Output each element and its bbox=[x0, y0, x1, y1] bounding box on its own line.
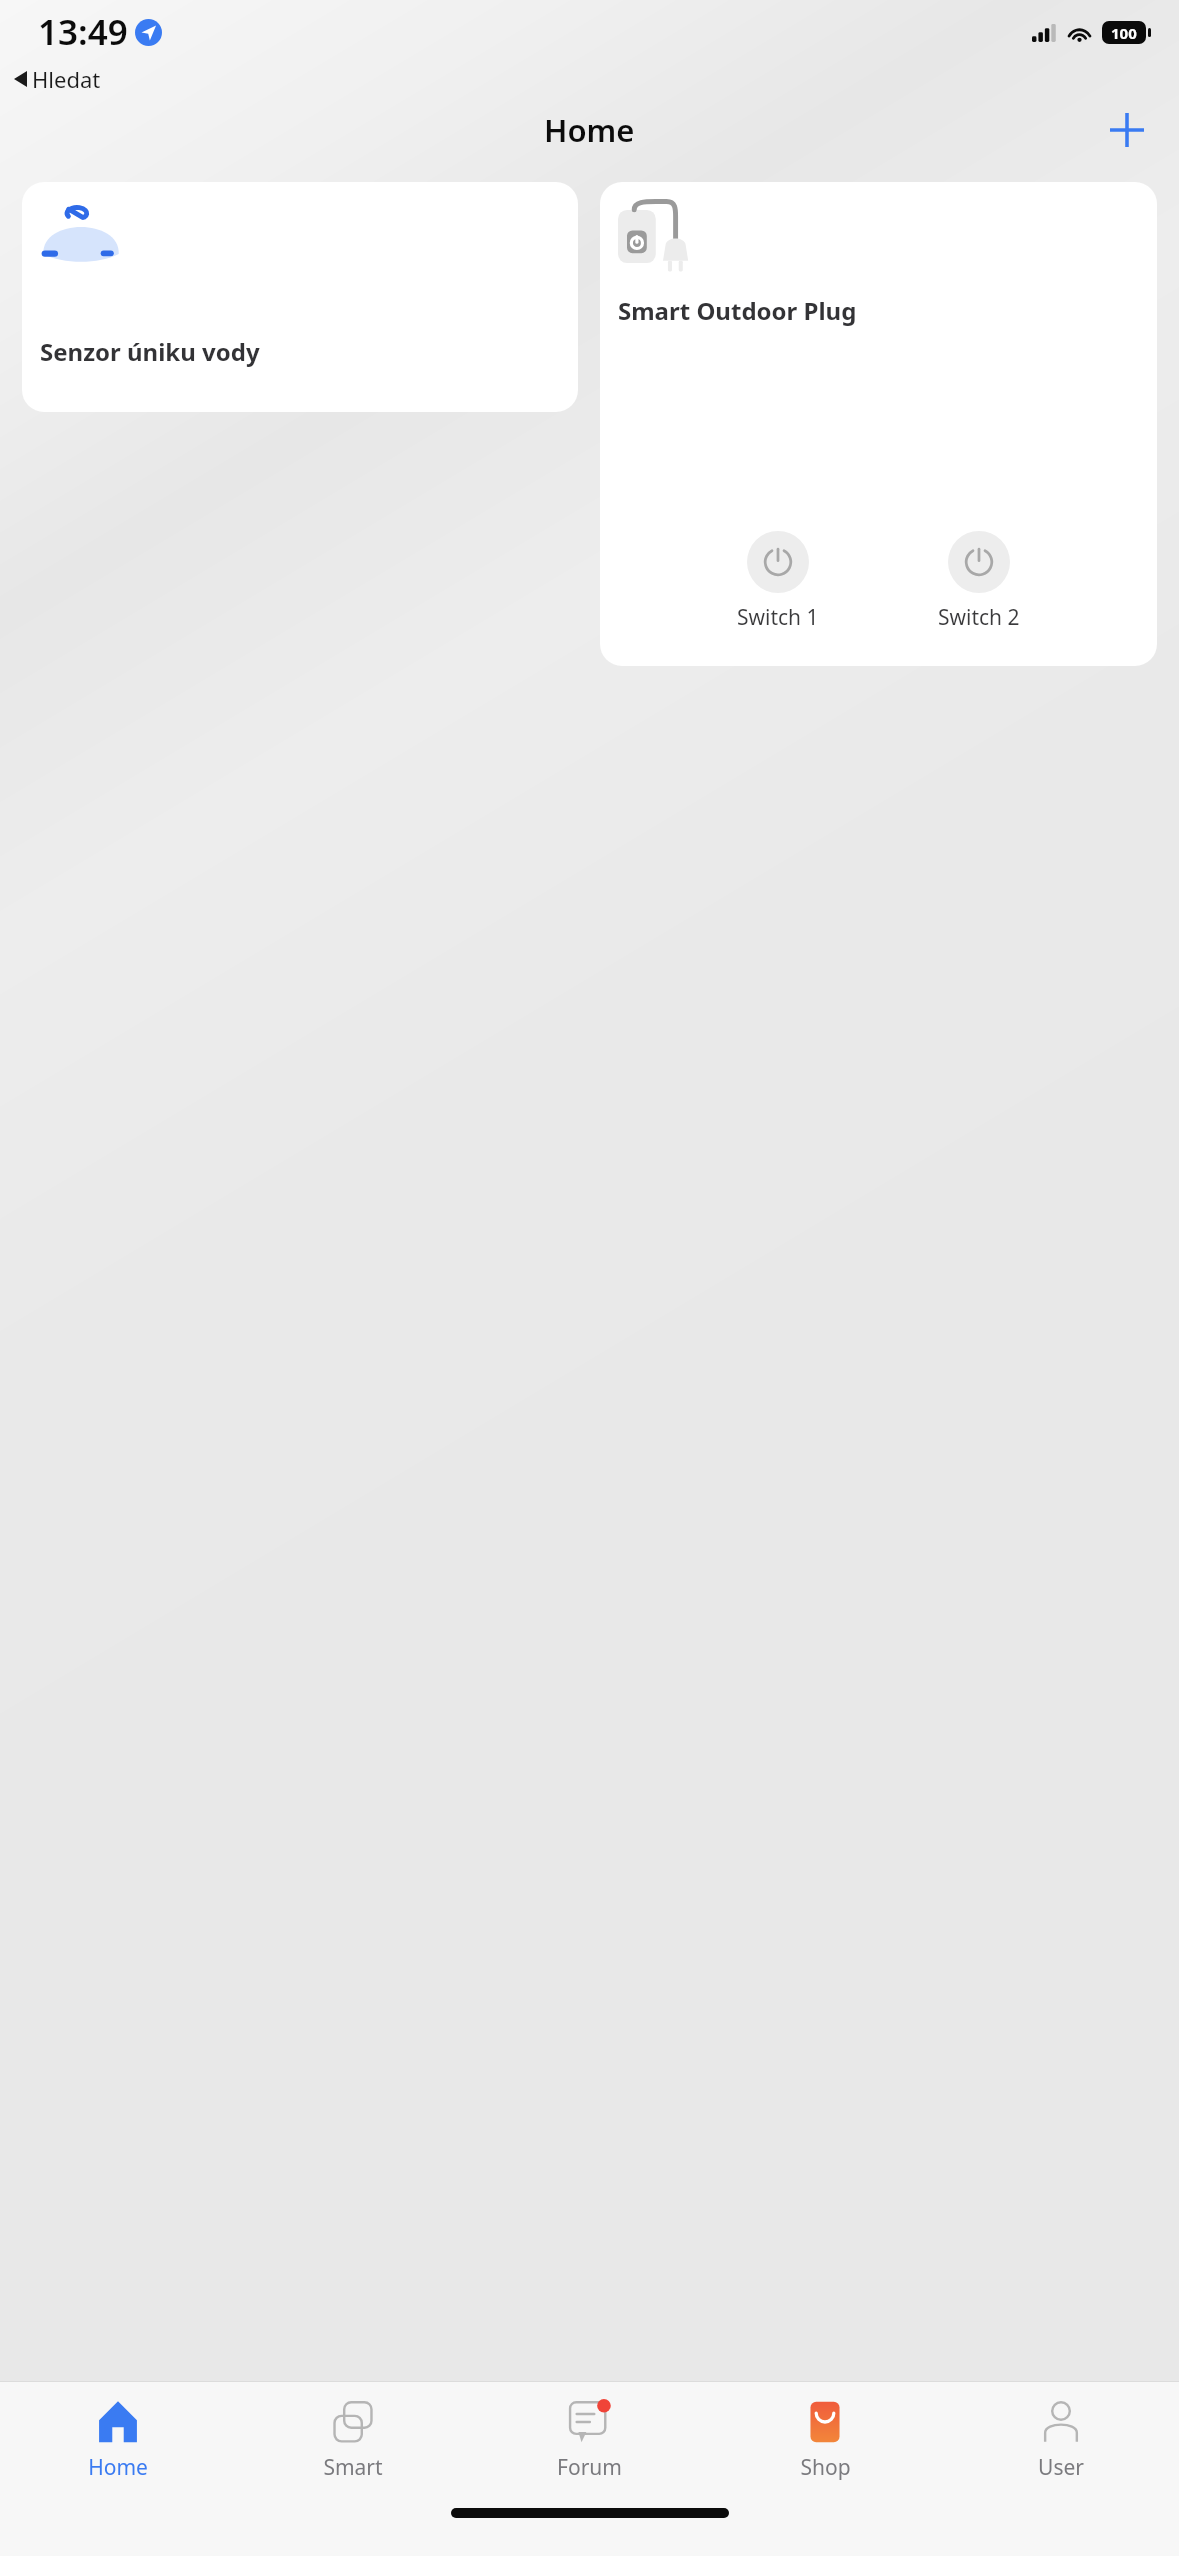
button[interactable]: Switch 2 bbox=[938, 531, 1020, 632]
button[interactable]: Smart Outdoor Plug bbox=[600, 182, 1157, 666]
staticText: Home bbox=[544, 109, 635, 151]
staticText: Smart Outdoor Plug bbox=[618, 294, 857, 327]
staticText: Home bbox=[88, 2453, 148, 2482]
button[interactable]: Add device bbox=[1099, 102, 1155, 158]
staticText: 13:49 bbox=[38, 8, 128, 56]
button[interactable]: Senzor úniku vody bbox=[22, 182, 578, 412]
button[interactable]: Shop bbox=[707, 2382, 943, 2500]
staticText: Senzor úniku vody bbox=[40, 335, 260, 368]
button[interactable]: Forum bbox=[471, 2382, 707, 2500]
staticText: 100 bbox=[1111, 23, 1137, 43]
staticText: Forum bbox=[557, 2453, 622, 2482]
staticText: Smart bbox=[323, 2453, 383, 2482]
button[interactable]: User bbox=[943, 2382, 1179, 2500]
staticText: Hledat bbox=[32, 64, 101, 94]
staticText: User bbox=[1038, 2453, 1084, 2482]
button[interactable]: Home bbox=[0, 2382, 235, 2500]
staticText: Switch 1 bbox=[737, 603, 819, 632]
button[interactable]: Back to Hledat bbox=[14, 64, 1179, 94]
button[interactable]: Smart bbox=[235, 2382, 471, 2500]
staticText: Switch 2 bbox=[938, 603, 1020, 632]
staticText: Shop bbox=[800, 2453, 851, 2482]
button[interactable]: Switch 1 bbox=[737, 531, 819, 632]
